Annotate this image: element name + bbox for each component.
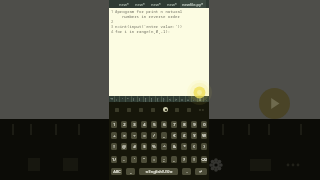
button[interactable]: Settings [210,159,222,171]
button[interactable]: + [185,96,191,102]
button[interactable]: ABC [111,168,122,175]
button[interactable]: ( [131,96,137,102]
staticText: ' [122,97,123,102]
button[interactable]: W [201,132,207,139]
button[interactable]: ! [191,156,197,163]
button[interactable]: $ [141,143,147,150]
button[interactable]: ¥ [191,132,197,139]
staticText: new* [119,2,129,7]
staticText: ! [193,157,195,162]
staticText: . [186,169,188,174]
staticText: 4 [143,122,146,127]
button[interactable]: + [111,132,117,139]
staticText: newfile.py* [182,2,204,7]
button[interactable]: 5 [151,121,157,128]
button[interactable]: # [197,96,203,102]
button[interactable]: ⇥ [109,96,114,102]
button[interactable]: [ [143,96,149,102]
button[interactable]: £ [181,132,187,139]
button[interactable]: ! [111,143,117,150]
button[interactable]: < [167,96,173,102]
button[interactable]: ' [131,156,137,163]
button[interactable]: ' [119,96,125,102]
button[interactable]: Keyboard tool [171,102,183,117]
staticText: new* [167,2,177,7]
button[interactable]: . [182,168,191,175]
button[interactable]: " [141,156,147,163]
button[interactable]: ? [181,156,187,163]
staticText: 8 [183,122,186,127]
button[interactable]: 6 [161,121,167,128]
button[interactable]: ) [201,143,207,150]
button[interactable]: : [151,156,157,163]
button[interactable]: , [171,156,177,163]
staticText: # [199,97,202,102]
button[interactable]: _ [161,132,167,139]
staticText: ' [134,157,135,162]
button[interactable]: 2 [121,121,127,128]
button[interactable]: € [171,132,177,139]
button[interactable]: ] [149,96,155,102]
button[interactable]: new* [148,0,164,8]
staticText: = [181,97,184,102]
button[interactable]: Play [259,88,290,119]
button[interactable]: newfile.py* [180,0,206,8]
button[interactable]: new* [132,0,148,8]
staticText: n=int(input('enter value:')) [115,24,183,29]
button[interactable]: { [155,96,161,102]
button[interactable]: Keyboard tool [195,102,207,117]
button[interactable]: Keyboard tool [111,102,123,117]
button[interactable]: ↵ [195,168,207,175]
button[interactable]: 4 [141,121,147,128]
button[interactable]: } [161,96,167,102]
staticText: ¥ [193,133,196,138]
button[interactable]: % [151,143,157,150]
button[interactable]: 8 [181,121,187,128]
button[interactable]: & [171,143,177,150]
button[interactable]: @ [121,143,127,150]
button[interactable]: ⌫ [201,156,207,163]
staticText: 0 [203,122,206,127]
button[interactable]: new* [164,0,180,8]
button[interactable]: - [121,156,127,163]
button[interactable]: / [151,132,157,139]
button[interactable]: = [141,132,147,139]
button[interactable]: ) [137,96,143,102]
button[interactable]: 9 [191,121,197,128]
button[interactable]: Keyboard tool [135,102,147,117]
button[interactable]: new* [116,0,132,8]
button[interactable]: - [191,96,197,102]
staticText: 3 [133,122,136,127]
button[interactable]: . [203,96,209,102]
button[interactable]: ^ [161,143,167,150]
staticText: } [163,97,165,102]
button[interactable]: Keyboard tool [183,102,195,117]
button[interactable]: 0 [201,121,207,128]
button[interactable]: , [126,168,135,175]
button[interactable]: 1 [111,121,117,128]
button[interactable]: * [181,143,187,150]
button[interactable]: ◂ English(US) ▸ [139,168,178,175]
staticText: ? [183,157,185,162]
button[interactable]: × [121,132,127,139]
button[interactable]: 7 [171,121,177,128]
button[interactable]: : [114,96,119,102]
staticText: ] [151,97,153,102]
button[interactable]: = [179,96,185,102]
button[interactable]: ; [161,156,167,163]
button[interactable]: Keyboard tool [123,102,135,117]
button[interactable]: 1/2 [111,156,117,163]
staticText: { [157,97,159,102]
staticText: ( [133,97,135,102]
button[interactable]: ( [191,143,197,150]
staticText: - [123,157,125,162]
button[interactable]: " [125,96,131,102]
button[interactable]: > [173,96,179,102]
button[interactable]: Keyboard tool [159,102,171,117]
button[interactable]: Keyboard tool [147,102,159,117]
button[interactable]: Run [186,79,213,106]
button[interactable]: 3 [131,121,137,128]
button[interactable]: ÷ [131,132,137,139]
staticText: ) [203,144,205,149]
button[interactable]: # [131,143,137,150]
